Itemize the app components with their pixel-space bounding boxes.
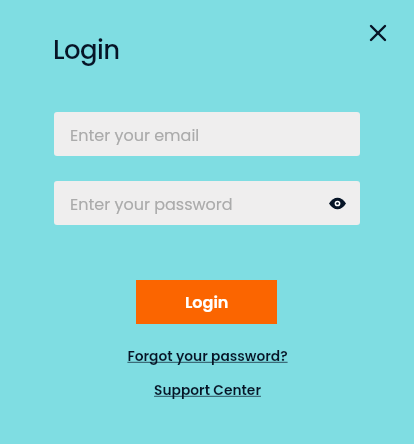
button[interactable]: Login: [136, 280, 277, 324]
button[interactable]: Close: [357, 12, 398, 53]
staticText: Enter your password: [70, 193, 233, 215]
staticText: Enter your email: [70, 124, 200, 146]
button[interactable]: Show password: [319, 181, 355, 225]
button[interactable]: Support Center: [0, 379, 414, 401]
staticText: Support Center: [154, 381, 261, 400]
staticText: Login: [185, 291, 229, 313]
staticText: Login: [53, 32, 120, 68]
staticText: Forgot your password?: [127, 347, 288, 366]
button[interactable]: Enter your password: [54, 181, 360, 225]
button[interactable]: Forgot your password?: [0, 345, 414, 367]
button[interactable]: Enter your email: [54, 112, 360, 156]
